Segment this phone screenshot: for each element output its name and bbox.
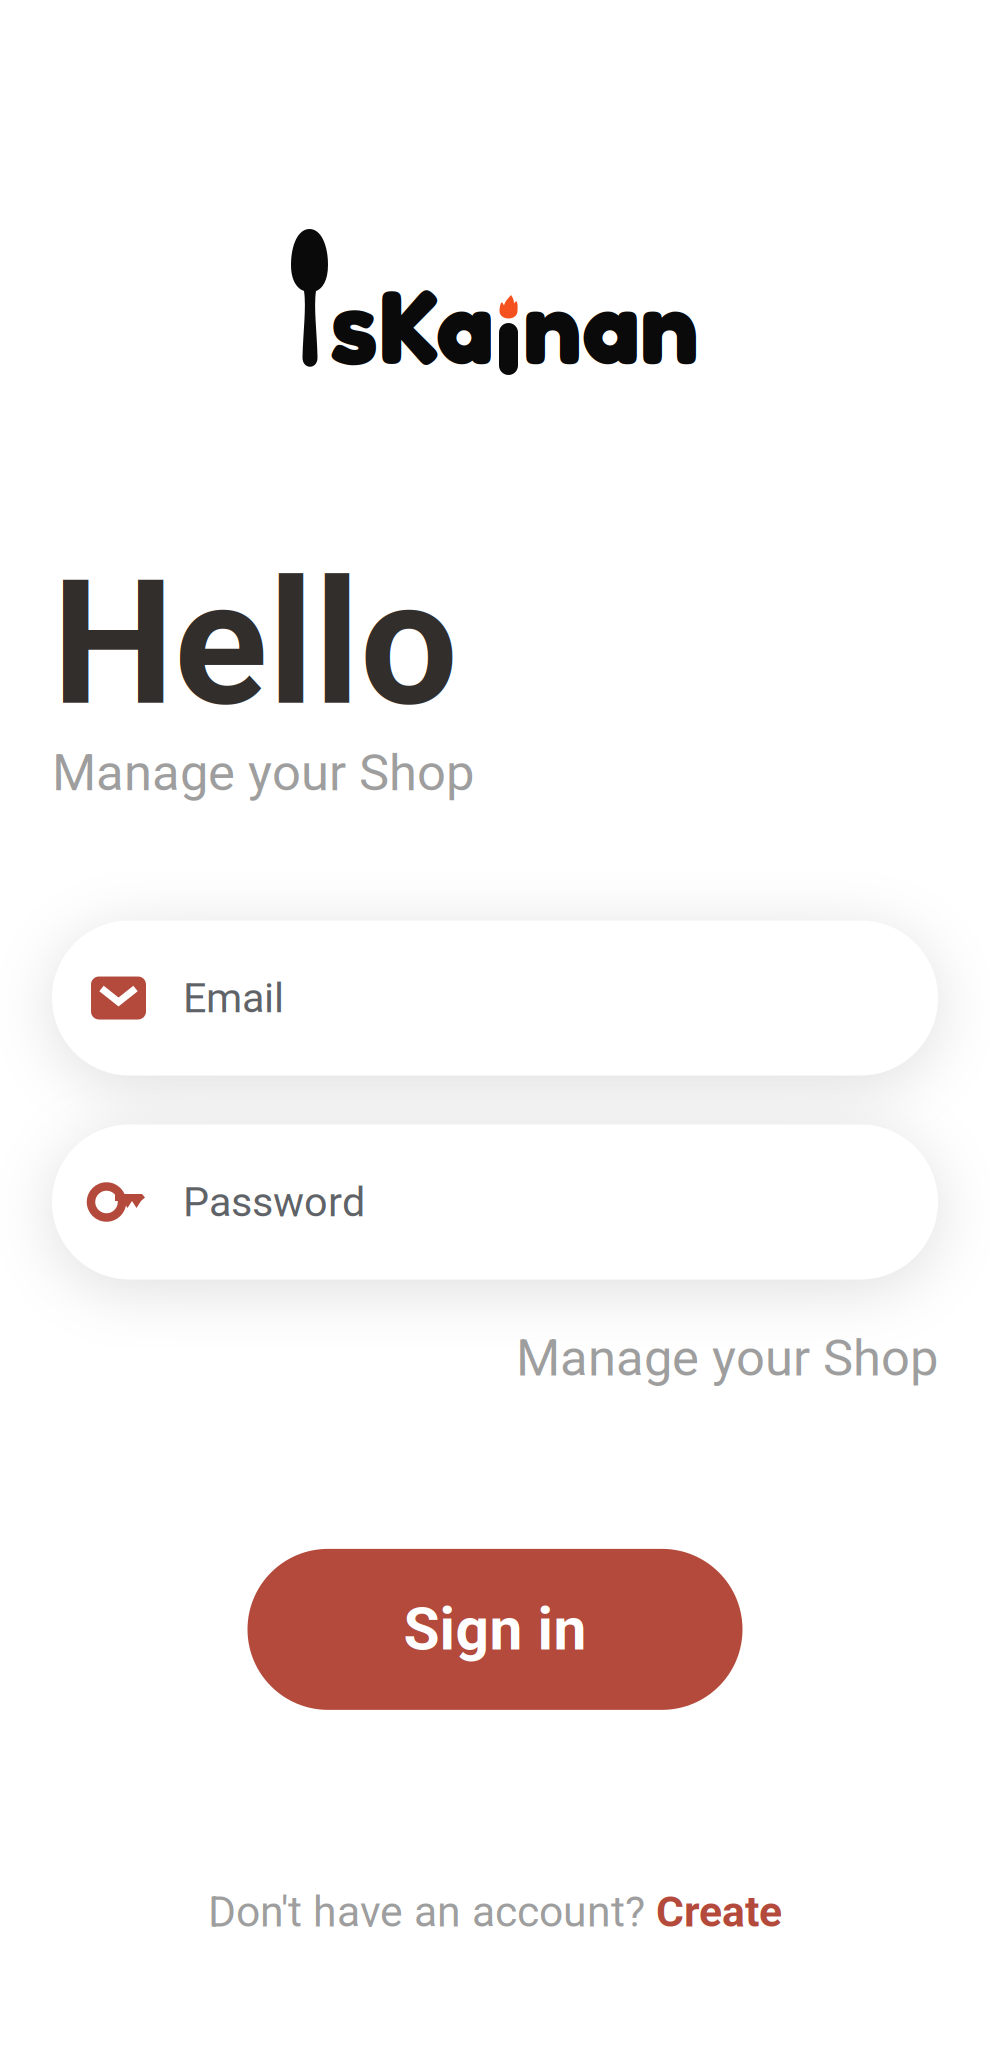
button[interactable]: Email — [52, 920, 938, 1075]
staticText: sKa — [330, 262, 494, 388]
button[interactable]: Password — [52, 1124, 938, 1279]
button[interactable]: Don't have an account? — [208, 1887, 782, 1937]
staticText: Hello — [52, 542, 458, 745]
staticText: Create — [656, 1887, 782, 1937]
staticText: Sign in — [403, 1595, 586, 1664]
button[interactable]: Manage your Shop — [516, 1328, 938, 1388]
staticText: Email — [183, 974, 284, 1022]
staticText: Manage your Shop — [516, 1328, 938, 1388]
staticText: Manage your Shop — [52, 743, 474, 802]
button[interactable]: Sign in — [247, 1549, 742, 1710]
staticText: Password — [183, 1178, 365, 1226]
staticText: nan — [523, 262, 699, 388]
staticText: Don't have an account? — [208, 1887, 656, 1937]
